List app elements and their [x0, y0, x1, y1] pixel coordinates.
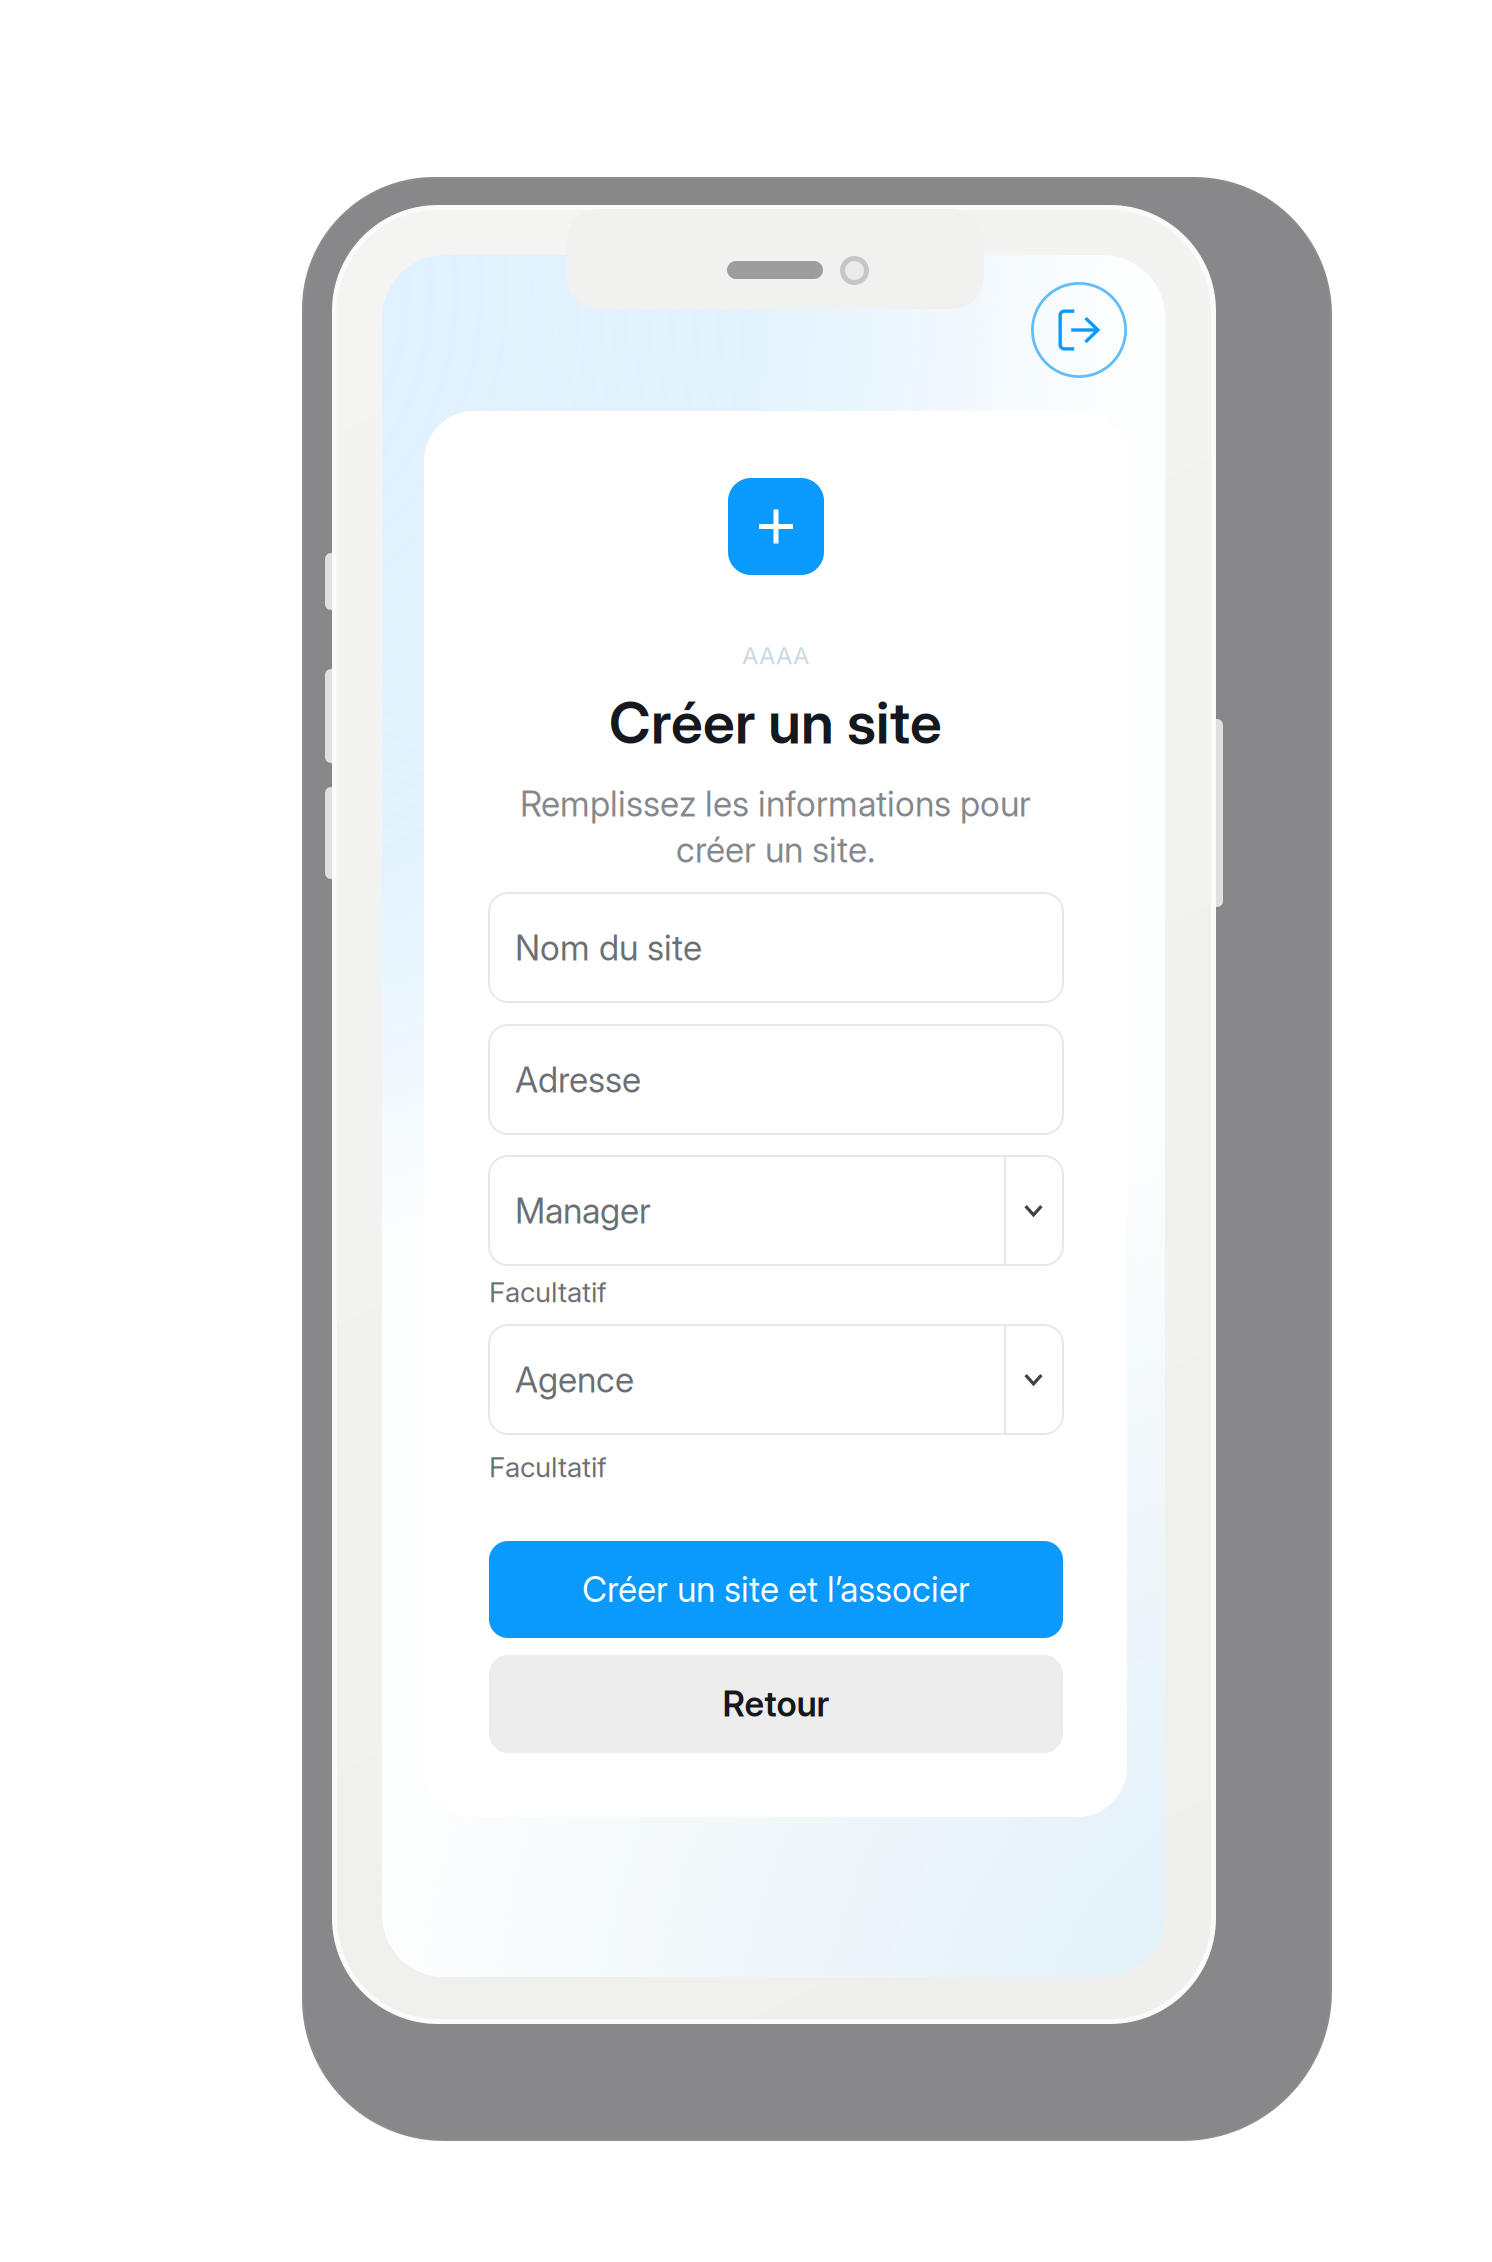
button[interactable]: Add — [728, 478, 824, 575]
staticText: Créer un site — [609, 688, 942, 757]
staticText: Nom du site — [515, 927, 702, 969]
staticText: Retour — [722, 1683, 829, 1725]
staticText: AAAA — [742, 641, 809, 670]
staticText: Créer un site et l’associer — [582, 1568, 970, 1610]
staticText: Agence — [515, 1359, 634, 1401]
staticText: Manager — [515, 1190, 651, 1232]
staticText: Adresse — [515, 1059, 641, 1101]
button[interactable]: Créer un site et l’associer — [489, 1541, 1063, 1638]
staticText: Facultatif — [489, 1450, 607, 1484]
button[interactable]: Retour — [489, 1655, 1063, 1753]
button[interactable]: Log out — [1031, 282, 1127, 378]
staticText: Remplissez les informations pour — [520, 783, 1031, 825]
staticText: Facultatif — [489, 1275, 607, 1309]
staticText: créer un site. — [676, 829, 875, 871]
